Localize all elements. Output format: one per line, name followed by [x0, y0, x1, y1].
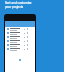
button[interactable]: [5, 35, 35, 39]
button[interactable]: [5, 31, 35, 35]
button[interactable]: [5, 47, 35, 51]
staticText: your projects: [5, 5, 24, 9]
button[interactable]: [5, 27, 35, 31]
staticText: Sort and customize: [5, 1, 32, 5]
button[interactable]: [5, 43, 35, 47]
button[interactable]: [5, 39, 35, 43]
